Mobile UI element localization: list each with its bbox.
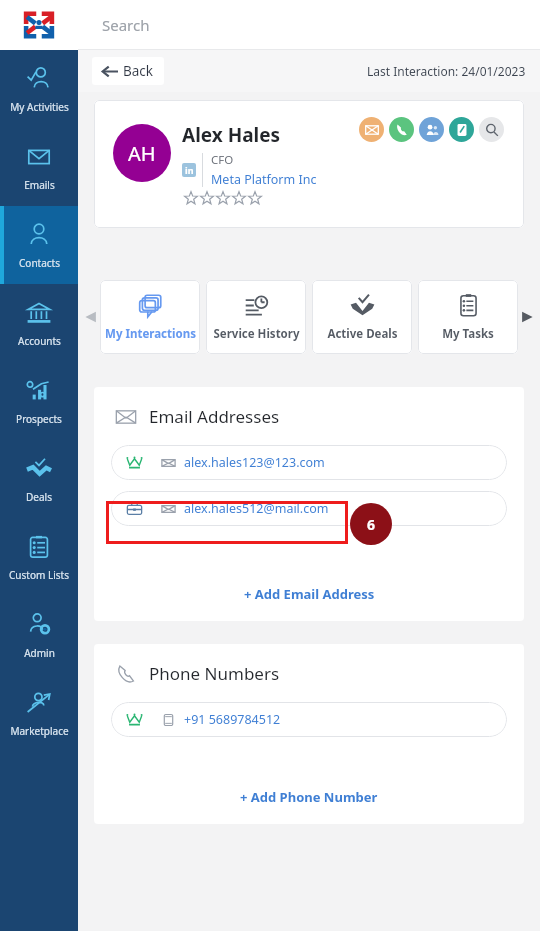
button[interactable]: Emails [0,128,78,206]
staticText: Admin [24,646,55,660]
button[interactable]: Call [389,117,414,142]
staticText: Accounts [18,334,61,348]
staticText: Deals [26,490,52,504]
staticText: CFO [211,152,234,168]
staticText: My Interactions [105,326,196,342]
button[interactable]: Service History [206,280,306,354]
button[interactable]: Accounts [0,284,78,362]
staticText: AH [128,140,156,167]
button[interactable]: Back [92,57,164,85]
staticText: Search [102,15,150,35]
button[interactable]: Contacts [0,206,78,284]
button[interactable]: + Add Phone Number [240,788,378,806]
staticText: Phone Numbers [149,662,280,685]
staticText: Email Addresses [149,405,280,428]
staticText: Last Interaction: 24/01/2023 [367,63,526,79]
staticText: alex.hales512@mail.com [184,500,329,517]
button[interactable]: Marketplace [0,674,78,752]
staticText: alex.hales123@123.com [184,454,325,471]
button[interactable]: Contacts [419,117,444,142]
button[interactable]: Prospects [0,362,78,440]
staticText: in [185,164,194,176]
button[interactable]: Active Deals [312,280,412,354]
button[interactable]: Search [479,117,504,142]
button[interactable]: Add note [449,117,474,142]
button[interactable]: Deals [0,440,78,518]
staticText: My Tasks [442,326,494,342]
staticText: Marketplace [10,724,69,738]
staticText: Alex Hales [182,122,281,148]
button[interactable]: Scroll tabs left [84,310,98,324]
staticText: +91 5689784512 [184,711,281,728]
button[interactable]: Custom Lists [0,518,78,596]
staticText: My Activities [10,100,69,114]
staticText: Back [123,62,154,80]
staticText: Custom Lists [9,568,69,582]
button[interactable]: My Interactions [100,280,200,354]
button[interactable] [215,190,231,206]
button[interactable]: My Tasks [418,280,518,354]
button[interactable]: +91 5689784512 [111,702,507,737]
staticText: 6 [367,515,376,534]
staticText: Service History [213,326,300,342]
button[interactable]: alex.hales512@mail.com [111,491,507,526]
button[interactable]: alex.hales123@123.com [111,445,507,480]
button[interactable]: + Add Email Address [244,585,375,603]
staticText: Active Deals [327,326,398,342]
button[interactable] [199,190,215,206]
button[interactable]: Send email [359,117,384,142]
staticText: Emails [24,178,55,192]
button[interactable]: Meta Platform Inc [211,171,317,188]
button[interactable] [183,190,199,206]
button[interactable]: Scroll tabs right [520,310,534,324]
staticText: Prospects [16,412,62,426]
button[interactable] [231,190,247,206]
button[interactable] [247,190,263,206]
button[interactable]: Admin [0,596,78,674]
button[interactable]: My Activities [0,50,78,128]
staticText: Contacts [19,256,60,270]
